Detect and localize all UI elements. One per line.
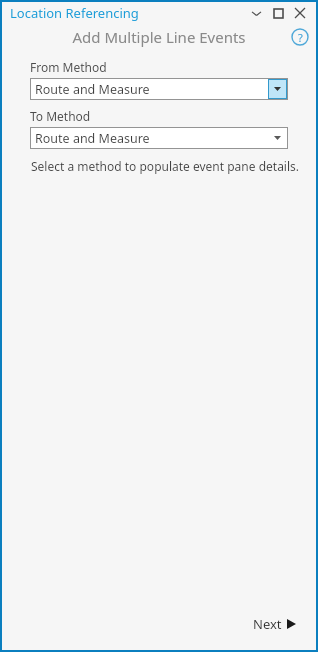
staticText: From Method: [30, 59, 107, 75]
staticText: ?: [298, 30, 303, 45]
staticText: Select a method to populate event pane d…: [31, 158, 300, 174]
button[interactable]: Route and Measure: [31, 79, 287, 99]
button[interactable]: Maximize: [268, 3, 288, 23]
staticText: To Method: [30, 108, 91, 124]
staticText: Location Referencing: [10, 4, 139, 22]
button[interactable]: Next: [249, 612, 300, 636]
button[interactable]: Collapse: [246, 3, 266, 23]
staticText: Add Multiple Line Events: [28, 27, 290, 47]
staticText: Route and Measure: [35, 81, 268, 98]
button[interactable]: Help: [291, 28, 309, 46]
button[interactable]: Close: [290, 3, 310, 23]
staticText: Route and Measure: [35, 130, 268, 147]
button[interactable]: Route and Measure: [31, 128, 287, 148]
staticText: Next: [253, 615, 282, 633]
